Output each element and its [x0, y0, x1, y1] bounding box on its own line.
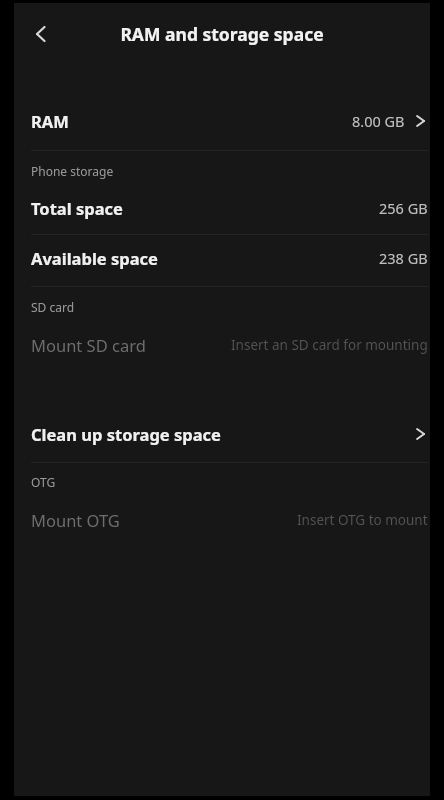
staticText: 256 GB: [379, 198, 428, 218]
button[interactable]: Total space: [14, 188, 430, 228]
button[interactable]: Mount OTG: [14, 499, 430, 541]
staticText: Insert an SD card for mounting: [231, 336, 428, 354]
staticText: Insert OTG to mount: [297, 511, 428, 529]
staticText: 238 GB: [379, 248, 428, 268]
staticText: Available space: [31, 247, 158, 269]
staticText: Mount OTG: [31, 509, 120, 531]
staticText: SD card: [31, 299, 75, 315]
button[interactable]: Clean up storage space: [14, 414, 430, 454]
staticText: Phone storage: [31, 163, 114, 179]
staticText: OTG: [31, 474, 56, 490]
button[interactable]: Available space: [14, 235, 430, 281]
button[interactable]: Back: [17, 10, 65, 58]
staticText: Clean up storage space: [31, 423, 221, 445]
button[interactable]: RAM: [14, 100, 430, 142]
staticText: RAM: [31, 110, 69, 132]
staticText: Mount SD card: [31, 334, 146, 356]
staticText: Total space: [31, 197, 123, 219]
staticText: 8.00 GB: [352, 111, 405, 131]
staticText: RAM and storage space: [14, 22, 430, 46]
button[interactable]: Mount SD card: [14, 324, 430, 366]
